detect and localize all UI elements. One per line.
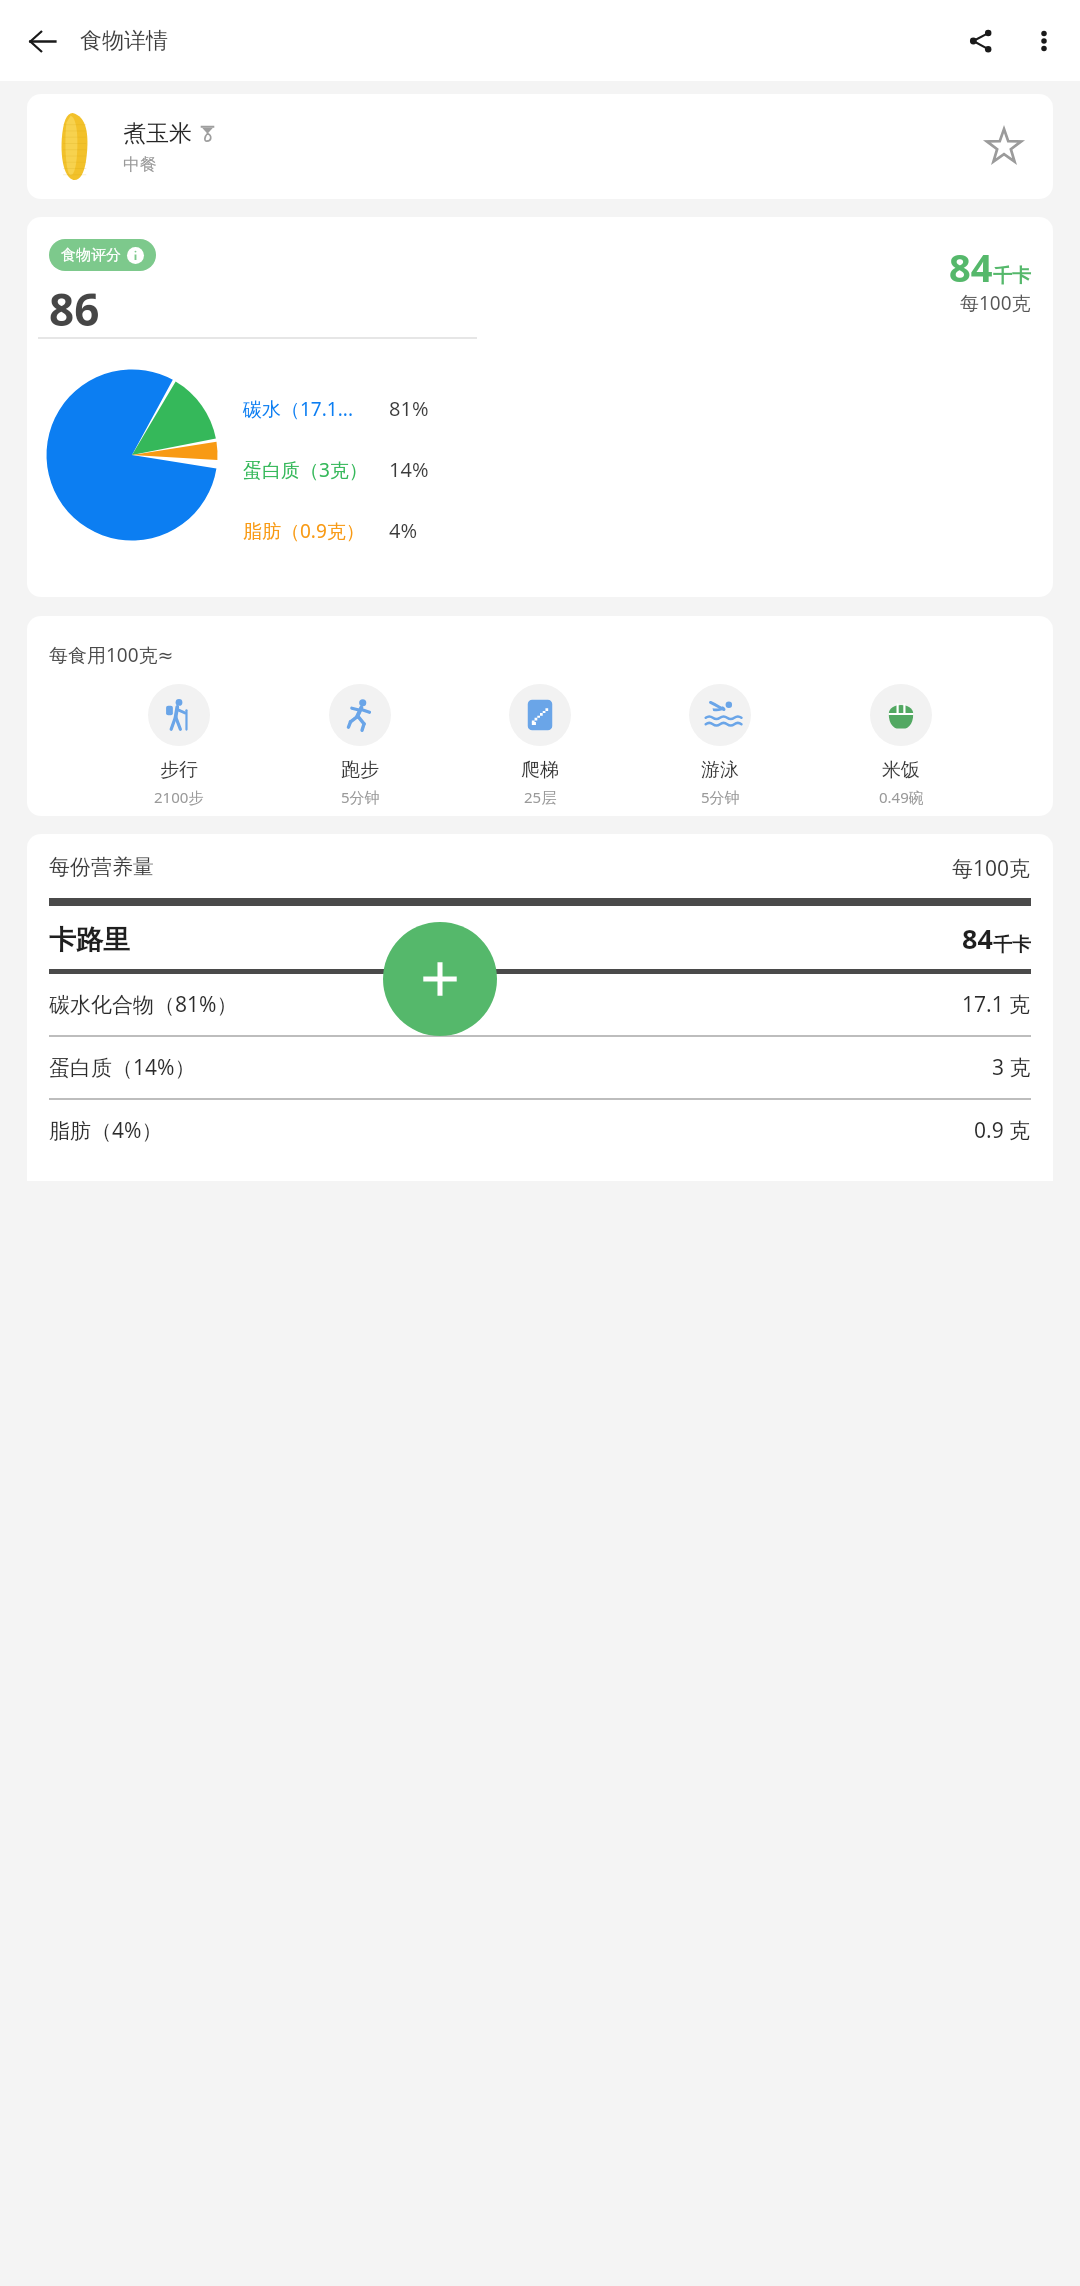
staticText: 17.1 克 — [962, 990, 1031, 1019]
staticText: 2100步 — [154, 787, 204, 807]
staticText: 84 — [949, 241, 993, 293]
staticText: 跑步 — [341, 758, 379, 782]
staticText: 5分钟 — [701, 787, 740, 807]
staticText: 0.9 克 — [974, 1116, 1031, 1145]
staticText: 3 克 — [992, 1053, 1031, 1082]
staticText: 碳水（17.1... — [243, 396, 353, 422]
button[interactable]: 米饭 — [863, 684, 939, 807]
staticText: 5分钟 — [341, 787, 380, 807]
button[interactable]: 食物评分 — [49, 239, 156, 271]
button[interactable]: 脂肪（4%） — [49, 1100, 1031, 1161]
button[interactable]: 跑步 — [322, 684, 398, 807]
staticText: 84 — [962, 920, 993, 957]
staticText: 86 — [49, 279, 100, 339]
button[interactable]: Share — [955, 15, 1007, 67]
staticText: 每食用100克≈ — [49, 642, 174, 668]
button[interactable]: More options — [1018, 15, 1070, 67]
staticText: 爬梯 — [521, 758, 559, 782]
staticText: 14% — [389, 456, 429, 483]
staticText: 每份营养量 — [49, 854, 154, 880]
staticText: 煮玉米 — [123, 119, 192, 148]
button[interactable]: 碳水化合物（81%） — [49, 974, 1031, 1035]
staticText: 脂肪（4%） — [49, 1116, 163, 1145]
staticText: 81% — [389, 395, 429, 422]
staticText: 4% — [389, 517, 418, 544]
staticText: 游泳 — [701, 758, 739, 782]
staticText: 碳水化合物（81%） — [49, 990, 238, 1019]
button[interactable]: 游泳 — [682, 684, 758, 807]
staticText: 步行 — [160, 758, 198, 782]
staticText: 25层 — [524, 787, 557, 807]
staticText: 千卡 — [993, 264, 1031, 288]
button[interactable]: Back — [14, 13, 70, 69]
staticText: 脂肪（0.9克） — [243, 518, 365, 544]
staticText: 卡路里 — [49, 923, 130, 957]
button[interactable]: Add — [383, 922, 497, 1036]
button[interactable]: 爬梯 — [502, 684, 578, 807]
button[interactable]: 煮玉米 — [27, 94, 1053, 199]
staticText: 每100克 — [952, 854, 1031, 883]
staticText: 每100克 — [960, 290, 1031, 316]
button[interactable]: 蛋白质（14%） — [49, 1037, 1031, 1098]
staticText: 蛋白质（3克） — [243, 457, 368, 483]
staticText: 米饭 — [882, 758, 920, 782]
staticText: 0.49碗 — [879, 787, 924, 807]
button[interactable]: 步行 — [141, 684, 217, 807]
staticText: 蛋白质（14%） — [49, 1053, 196, 1082]
staticText: 中餐 — [123, 154, 157, 175]
button[interactable]: Favorite — [977, 120, 1031, 174]
staticText: 食物评分 — [61, 246, 121, 265]
staticText: 食物详情 — [80, 27, 168, 55]
staticText: 千卡 — [993, 933, 1031, 957]
